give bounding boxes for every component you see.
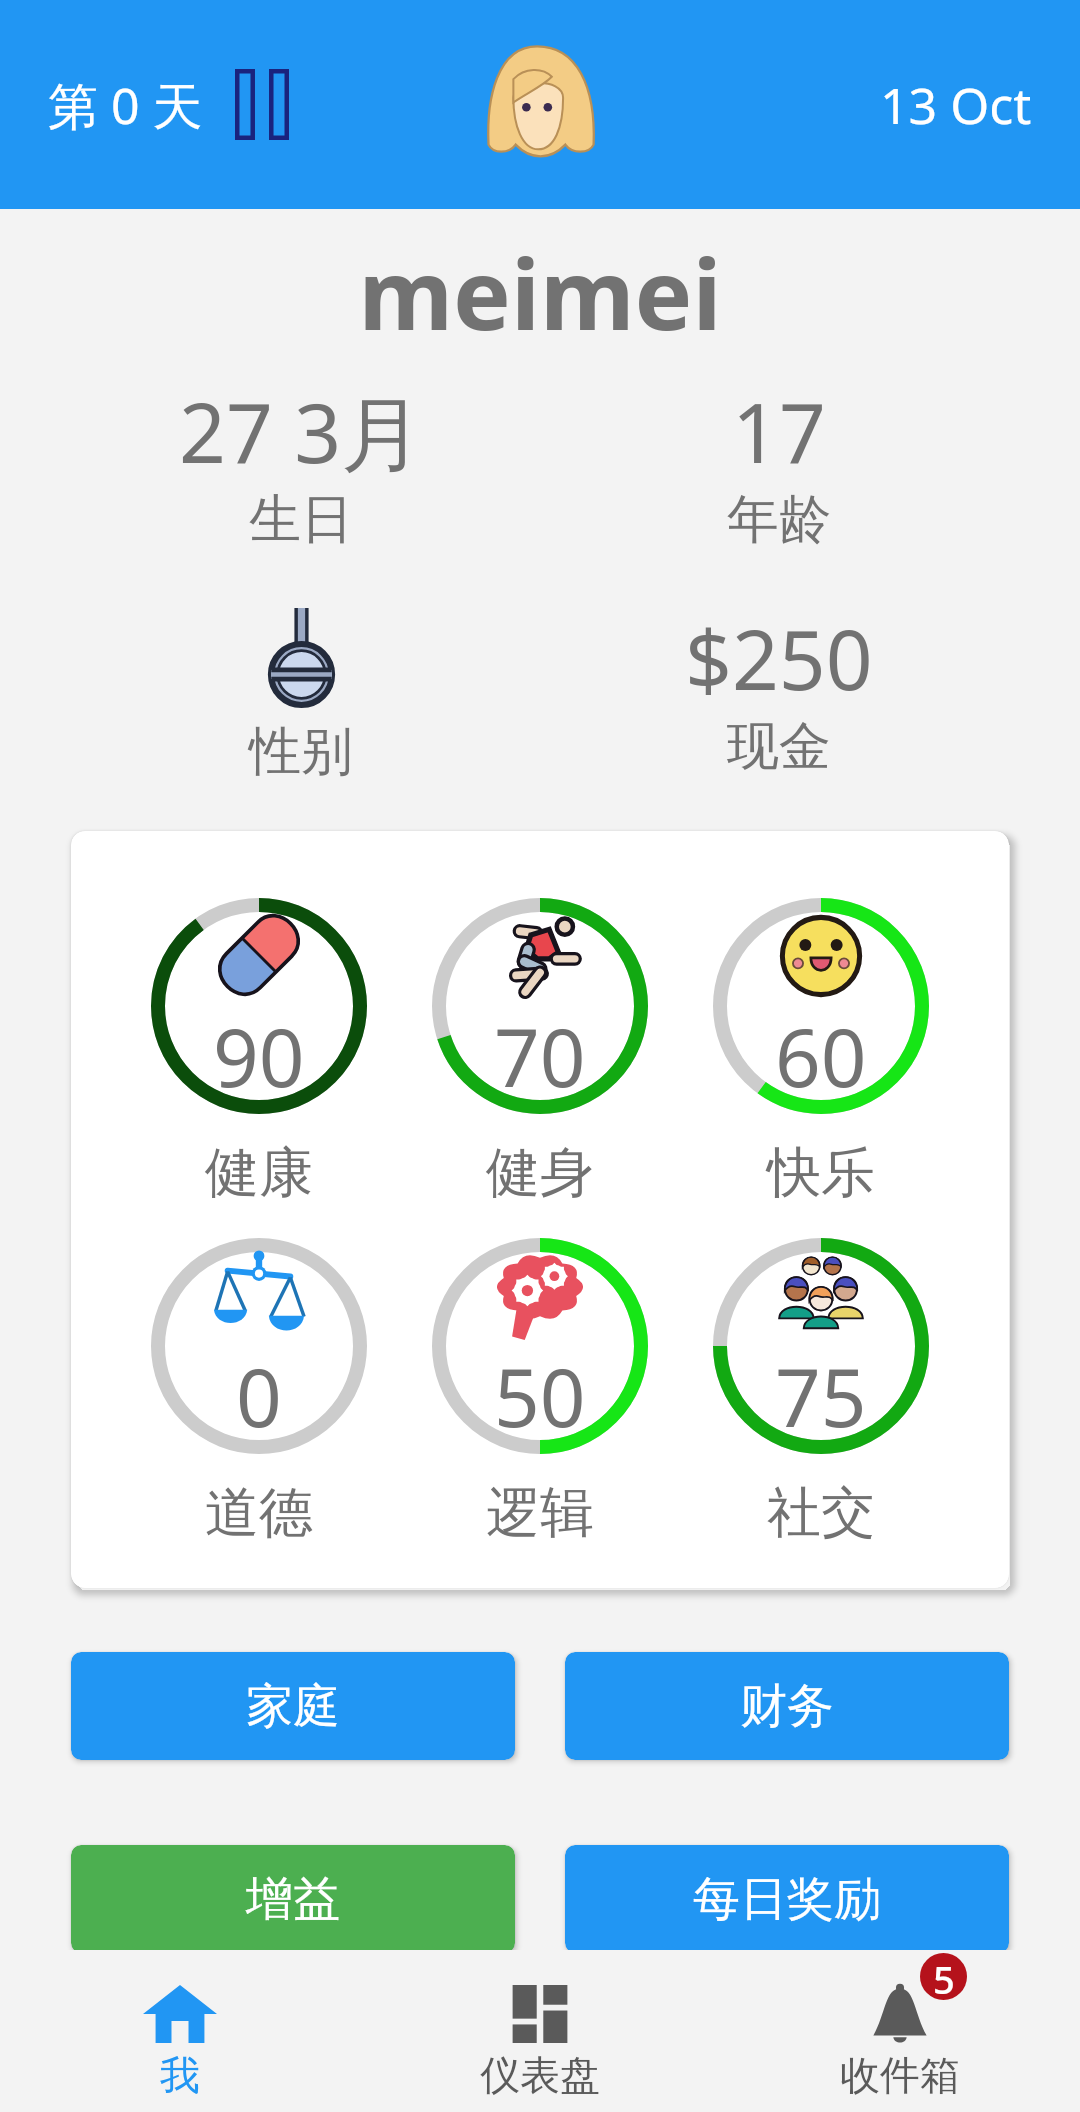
button[interactable]: 第 0 天: [48, 69, 289, 140]
staticText: 13 Oct: [880, 71, 1032, 139]
staticText: 健身: [486, 1139, 594, 1207]
staticText: 27 3月: [179, 375, 424, 487]
staticText: 社交: [767, 1479, 875, 1547]
button[interactable]: 我: [0, 1950, 360, 2112]
staticText: 我: [160, 2050, 200, 2100]
staticText: 家庭: [246, 1677, 340, 1736]
button[interactable]: 仪表盘: [360, 1950, 720, 2112]
staticText: 性别: [249, 719, 353, 785]
staticText: 75: [775, 1341, 867, 1450]
staticText: 0: [236, 1341, 282, 1450]
button[interactable]: Gender: [62, 602, 540, 785]
staticText: 90: [213, 1001, 305, 1110]
button[interactable]: $250: [540, 602, 1018, 780]
staticText: 70: [494, 1001, 586, 1110]
button[interactable]: 17: [540, 375, 1018, 553]
staticText: 健康: [205, 1139, 313, 1207]
staticText: 快乐: [767, 1139, 875, 1207]
button[interactable]: 每日奖励: [565, 1845, 1009, 1953]
button[interactable]: Profile avatar: [484, 44, 597, 161]
staticText: 收件箱: [840, 2050, 960, 2100]
staticText: 60: [775, 1001, 867, 1110]
button[interactable]: 27 3月: [62, 375, 540, 553]
staticText: $250: [685, 602, 873, 714]
button[interactable]: 70: [399, 898, 680, 1207]
staticText: 第 0 天: [48, 71, 203, 139]
staticText: 仪表盘: [480, 2050, 600, 2100]
button[interactable]: 0: [119, 1238, 399, 1547]
staticText: 财务: [740, 1677, 834, 1736]
staticText: 增益: [246, 1870, 340, 1929]
staticText: 现金: [727, 714, 831, 780]
staticText: 每日奖励: [693, 1870, 881, 1929]
button[interactable]: Pause: [235, 69, 289, 140]
button[interactable]: 50: [399, 1238, 680, 1547]
button[interactable]: 90: [119, 898, 399, 1207]
staticText: 逻辑: [486, 1479, 594, 1547]
staticText: 5: [933, 1953, 955, 2000]
other: Gender: [270, 608, 333, 706]
button[interactable]: 60: [680, 898, 961, 1207]
button[interactable]: 75: [680, 1238, 961, 1547]
button[interactable]: 增益: [71, 1845, 515, 1953]
staticText: meimei: [0, 226, 1080, 358]
button[interactable]: 财务: [565, 1652, 1009, 1760]
button[interactable]: 收件箱: [720, 1950, 1080, 2112]
staticText: 50: [494, 1341, 586, 1450]
staticText: 年龄: [727, 487, 831, 553]
staticText: 17: [732, 375, 826, 487]
staticText: 生日: [249, 487, 353, 553]
button[interactable]: 家庭: [71, 1652, 515, 1760]
staticText: 道德: [205, 1479, 313, 1547]
